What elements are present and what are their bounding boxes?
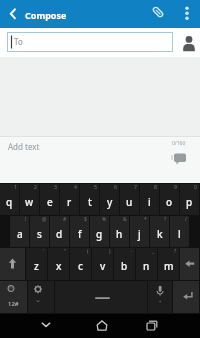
button[interactable]	[4, 4, 22, 22]
staticText: )	[109, 248, 111, 255]
staticText: e	[47, 195, 53, 209]
staticText: ?	[164, 216, 167, 223]
staticText: _	[152, 248, 155, 255]
staticText: y	[107, 195, 113, 209]
button[interactable]	[148, 2, 168, 22]
button[interactable]: 9	[160, 184, 179, 215]
button[interactable]: 7	[120, 184, 139, 215]
staticText: *	[144, 216, 147, 223]
staticText: n	[143, 259, 150, 273]
button[interactable]: %	[90, 216, 109, 247]
staticText: p	[186, 195, 193, 209]
staticText: v	[100, 259, 106, 273]
button[interactable]: /	[170, 216, 189, 247]
staticText: h	[116, 227, 123, 241]
staticText: !	[25, 216, 27, 223]
staticText: 1	[14, 184, 17, 191]
button[interactable]	[173, 281, 199, 313]
button[interactable]: 2	[20, 184, 39, 215]
button[interactable]: 5	[80, 184, 99, 215]
staticText: 12#	[8, 300, 19, 308]
staticText: Compose	[25, 9, 67, 21]
staticText: @	[42, 216, 47, 223]
button[interactable]: &	[110, 216, 129, 247]
staticText: c	[78, 259, 83, 273]
staticText: /	[185, 216, 187, 223]
staticText: #	[63, 216, 67, 223]
button[interactable]: '	[26, 248, 47, 280]
button[interactable]: !	[10, 216, 29, 247]
button[interactable]	[180, 248, 199, 280]
staticText: t	[88, 195, 92, 209]
button[interactable]: 4	[60, 184, 79, 215]
staticText: u	[126, 195, 133, 209]
staticText: x	[56, 259, 62, 273]
staticText: l	[178, 227, 181, 241]
staticText: r	[67, 195, 72, 209]
staticText: w	[25, 195, 34, 209]
staticText: m	[164, 259, 174, 273]
button[interactable]: 12#	[0, 281, 27, 313]
button[interactable]	[92, 314, 112, 338]
staticText: q	[6, 195, 13, 209]
staticText: '	[43, 248, 45, 255]
button[interactable]	[180, 2, 196, 26]
button[interactable]: _	[136, 248, 157, 280]
button[interactable]	[148, 281, 172, 313]
button[interactable]: "	[48, 248, 69, 280]
button[interactable]	[28, 281, 54, 313]
button[interactable]: (	[70, 248, 91, 280]
staticText: ?	[174, 248, 177, 255]
button[interactable]: 3	[40, 184, 59, 215]
staticText: 3	[54, 184, 57, 191]
staticText: d	[56, 227, 63, 241]
button[interactable]: To	[7, 32, 173, 52]
staticText: 7	[134, 184, 137, 191]
staticText: 4	[74, 184, 77, 191]
staticText: %	[102, 216, 107, 223]
staticText: (	[87, 248, 89, 255]
staticText: o	[166, 195, 173, 209]
staticText: j	[138, 227, 141, 241]
staticText: 8	[154, 184, 157, 191]
staticText: &	[123, 216, 127, 223]
button[interactable]	[55, 281, 147, 313]
button[interactable]	[36, 314, 56, 338]
staticText: "	[64, 248, 67, 255]
button[interactable]: 1	[0, 184, 19, 215]
button[interactable]: @	[30, 216, 49, 247]
staticText: -	[131, 248, 133, 255]
button[interactable]: ?	[158, 248, 179, 280]
button[interactable]: #	[50, 216, 69, 247]
staticText: f	[78, 227, 82, 241]
button[interactable]: 8	[140, 184, 159, 215]
staticText: k	[157, 227, 163, 241]
staticText: 0	[194, 184, 197, 191]
button[interactable]: -	[114, 248, 135, 280]
button[interactable]: )	[92, 248, 113, 280]
staticText: 2	[34, 184, 37, 191]
button[interactable]: 6	[100, 184, 119, 215]
staticText: b	[121, 259, 128, 273]
staticText: Add text	[8, 141, 40, 152]
button[interactable]	[168, 150, 190, 168]
button[interactable]: ?	[150, 216, 169, 247]
staticText: g	[96, 227, 103, 241]
button[interactable]	[180, 33, 198, 51]
staticText: s	[37, 227, 42, 241]
staticText: $	[84, 216, 87, 223]
button[interactable]: *	[130, 216, 149, 247]
staticText: 6	[114, 184, 117, 191]
button[interactable]	[142, 314, 162, 338]
button[interactable]: 0	[180, 184, 199, 215]
button[interactable]: $	[70, 216, 89, 247]
staticText: 9	[174, 184, 177, 191]
button[interactable]	[0, 248, 25, 280]
staticText: a	[17, 227, 23, 241]
staticText: To	[14, 36, 23, 47]
staticText: 5	[94, 184, 97, 191]
staticText: i	[148, 195, 151, 209]
staticText: z	[34, 259, 39, 273]
staticText: 0/160	[172, 140, 186, 147]
